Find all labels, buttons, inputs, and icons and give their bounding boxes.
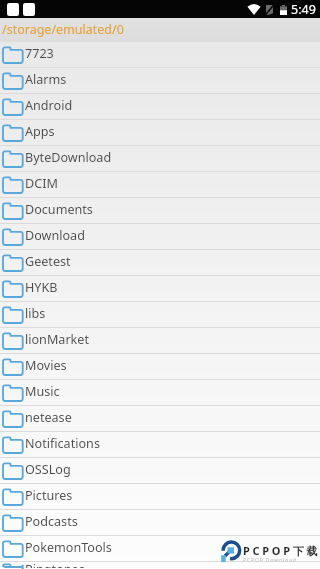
staticText: Apps	[25, 123, 55, 140]
staticText: lionMarket	[25, 331, 89, 348]
staticText: DCIM	[25, 175, 58, 192]
button[interactable]: Download	[0, 224, 320, 250]
button[interactable]: PokemonTools	[0, 536, 320, 562]
staticText: Pictures	[25, 487, 73, 504]
button[interactable]: Podcasts	[0, 510, 320, 536]
button[interactable]: Ringtones	[0, 562, 320, 569]
staticText: Podcasts	[25, 513, 78, 530]
button[interactable]: Geetest	[0, 250, 320, 276]
staticText: ByteDownload	[25, 149, 112, 166]
staticText: Geetest	[25, 253, 71, 270]
staticText: Download	[25, 227, 85, 244]
staticText: Ringtones	[25, 561, 85, 568]
staticText: netease	[25, 409, 72, 426]
staticText: Notifications	[25, 435, 100, 452]
button[interactable]: lionMarket	[0, 328, 320, 354]
staticText: OSSLog	[25, 461, 71, 478]
button[interactable]: HYKB	[0, 276, 320, 302]
button[interactable]: Alarms	[0, 68, 320, 94]
button[interactable]: Apps	[0, 120, 320, 146]
staticText: Music	[25, 383, 60, 400]
button[interactable]: Pictures	[0, 484, 320, 510]
button[interactable]: Android	[0, 94, 320, 120]
button[interactable]: netease	[0, 406, 320, 432]
button[interactable]: Movies	[0, 354, 320, 380]
button[interactable]: ByteDownload	[0, 146, 320, 172]
staticText: Movies	[25, 357, 67, 374]
staticText: /storage/emulated/0	[2, 21, 124, 38]
staticText: HYKB	[25, 279, 58, 296]
button[interactable]: Documents	[0, 198, 320, 224]
staticText: PokemonTools	[25, 539, 112, 556]
staticText: PCPOP Download	[243, 557, 297, 564]
button[interactable]: Music	[0, 380, 320, 406]
button[interactable]: libs	[0, 302, 320, 328]
staticText: 5:49	[291, 1, 316, 18]
staticText: 7723	[25, 45, 54, 62]
button[interactable]: 7723	[0, 42, 320, 68]
button[interactable]: /storage/emulated/0	[0, 18, 320, 42]
staticText: Documents	[25, 201, 93, 218]
staticText: libs	[25, 305, 46, 322]
staticText: PCPOP下载	[243, 543, 320, 558]
button[interactable]: Notifications	[0, 432, 320, 458]
button[interactable]: OSSLog	[0, 458, 320, 484]
staticText: Alarms	[25, 71, 67, 88]
staticText: Android	[25, 97, 73, 114]
button[interactable]: DCIM	[0, 172, 320, 198]
